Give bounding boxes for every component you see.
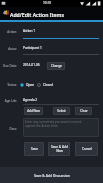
button[interactable]: Change [47,62,65,70]
button[interactable]: Save & Add New [48,142,70,156]
staticText: Action: [7,30,17,34]
staticText: Due Date: [3,64,17,68]
button[interactable]: Enter any comments you want to record ag… [23,118,99,137]
staticText: Status: [7,83,17,87]
button[interactable]: Add New [24,107,43,115]
button[interactable]: Navigate up [0,7,8,19]
staticText: Cancel [82,147,92,151]
staticText: Action 1 [23,29,36,33]
staticText: Add/Edit Action Items [10,11,65,18]
staticText: Enter any comments you want to record ag… [25,120,82,128]
staticText: Open [26,83,35,87]
button[interactable]: Save [24,142,44,156]
staticText: Change [51,64,62,68]
staticText: Save & Add Discussion [34,173,70,178]
staticText: Save & Add New [51,145,68,153]
staticText: 2014-01-06 [23,63,40,67]
staticText: Clear [80,109,88,113]
button[interactable]: Open [20,81,35,89]
staticText: Desc: [9,127,17,131]
button[interactable]: Cancel [75,142,98,156]
staticText: Save [31,147,38,151]
button[interactable]: Select [53,107,70,115]
button[interactable]: Clear [75,107,92,115]
staticText: Agn Lnk: [4,99,17,103]
staticText: Select [57,109,66,113]
staticText: Agenda 2 [23,98,38,102]
staticText: Assoc: [8,47,17,51]
staticText: 10:10 [43,1,52,5]
button[interactable]: Closed [37,81,54,89]
staticText: Participant 1 [23,46,42,50]
staticText: Closed [43,83,54,87]
staticText: Add New [27,109,40,113]
button[interactable]: Save & Add Discussion [0,167,103,183]
